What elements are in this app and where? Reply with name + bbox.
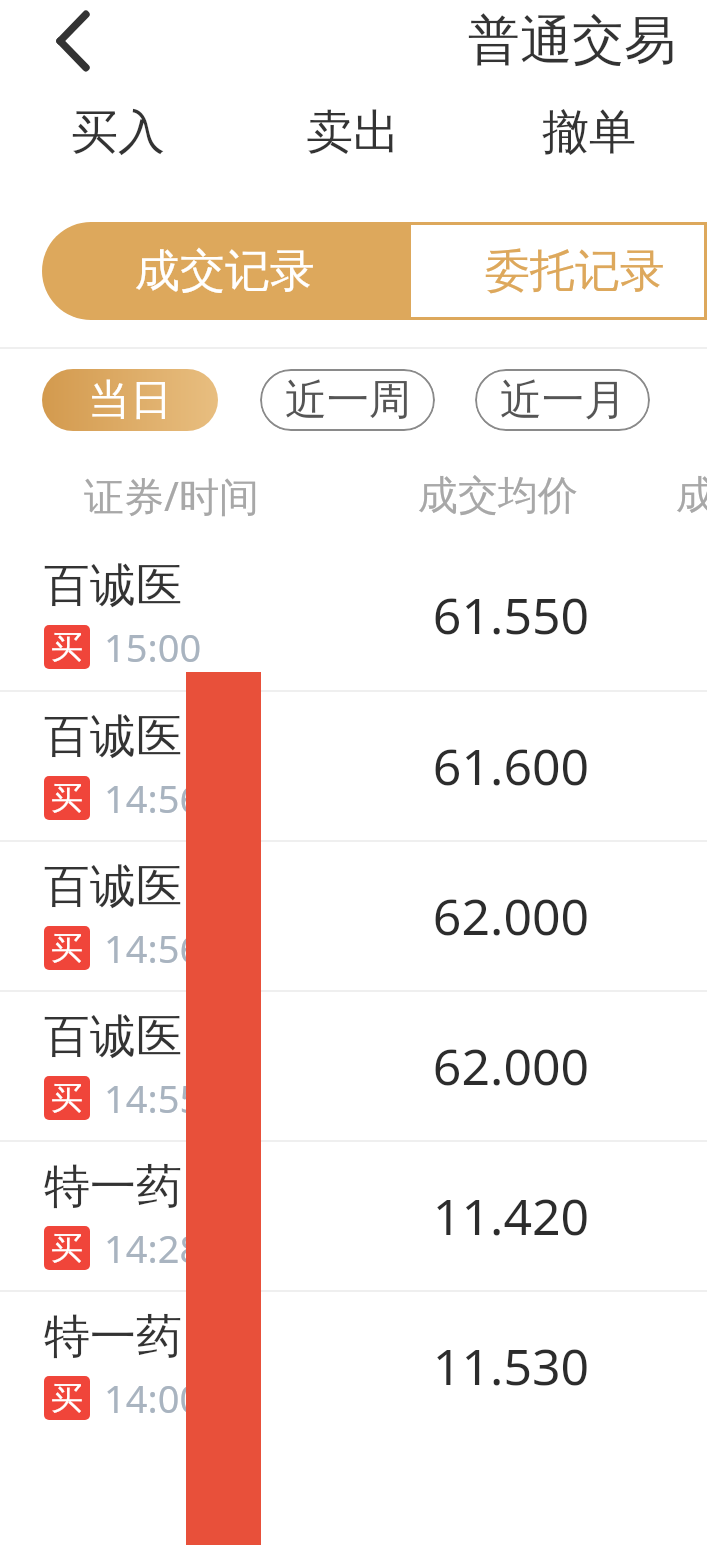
button[interactable]: 买入 xyxy=(0,82,235,182)
staticText: 62.000 xyxy=(370,882,652,950)
button[interactable]: 撤单 xyxy=(471,82,707,182)
staticText: 百诚医 xyxy=(44,708,182,766)
staticText: 62.000 xyxy=(370,1032,652,1100)
button[interactable]: 百诚医 xyxy=(0,692,707,840)
button[interactable]: Back xyxy=(28,0,118,82)
staticText: 买 xyxy=(51,1078,83,1118)
staticText: 成交均价 xyxy=(418,470,578,520)
staticText: 近一周 xyxy=(285,374,411,427)
staticText: 成 xyxy=(676,470,707,520)
button[interactable]: 百诚医 xyxy=(0,992,707,1140)
button[interactable]: 特一药 xyxy=(0,1142,707,1290)
staticText: 61.550 xyxy=(370,581,652,649)
staticText: 委托记录 xyxy=(485,243,665,300)
staticText: 百诚医 xyxy=(44,858,182,916)
button[interactable]: 当日 xyxy=(42,369,218,431)
staticText: 15:00 xyxy=(104,621,202,673)
staticText: 当日 xyxy=(88,374,172,427)
staticText: 百诚医 xyxy=(44,1008,182,1066)
staticText: 成交记录 xyxy=(135,243,315,300)
button[interactable]: 百诚医 xyxy=(0,842,707,990)
button[interactable]: 近一月 xyxy=(475,369,650,431)
staticText: 14:56 xyxy=(104,772,202,824)
staticText: 61.600 xyxy=(370,732,652,800)
button[interactable]: 特一药 xyxy=(0,1292,707,1440)
staticText: 买 xyxy=(51,627,83,667)
staticText: 证券/时间 xyxy=(84,468,259,523)
staticText: 卖出 xyxy=(306,103,400,162)
staticText: 14:00 xyxy=(104,1372,202,1424)
staticText: 买入 xyxy=(71,103,165,162)
button[interactable]: 卖出 xyxy=(235,82,471,182)
staticText: 买 xyxy=(51,1378,83,1418)
staticText: 撤单 xyxy=(542,103,636,162)
staticText: 特一药 xyxy=(44,1158,182,1216)
staticText: 11.530 xyxy=(370,1332,652,1400)
staticText: 买 xyxy=(51,778,83,818)
staticText: 百诚医 xyxy=(44,557,182,615)
staticText: 买 xyxy=(51,1228,83,1268)
staticText: 买 xyxy=(51,928,83,968)
button[interactable]: 委托记录 xyxy=(408,222,707,320)
staticText: 14:28 xyxy=(104,1222,202,1274)
staticText: 普通交易 xyxy=(468,8,676,74)
button[interactable]: 成交记录 xyxy=(42,222,408,320)
staticText: 14:55 xyxy=(104,1072,202,1124)
staticText: 近一月 xyxy=(500,374,626,427)
staticText: 14:56 xyxy=(104,922,202,974)
staticText: 11.420 xyxy=(370,1182,652,1250)
staticText: 特一药 xyxy=(44,1308,182,1366)
button[interactable]: 近一周 xyxy=(260,369,435,431)
button[interactable]: 百诚医 xyxy=(0,540,707,690)
